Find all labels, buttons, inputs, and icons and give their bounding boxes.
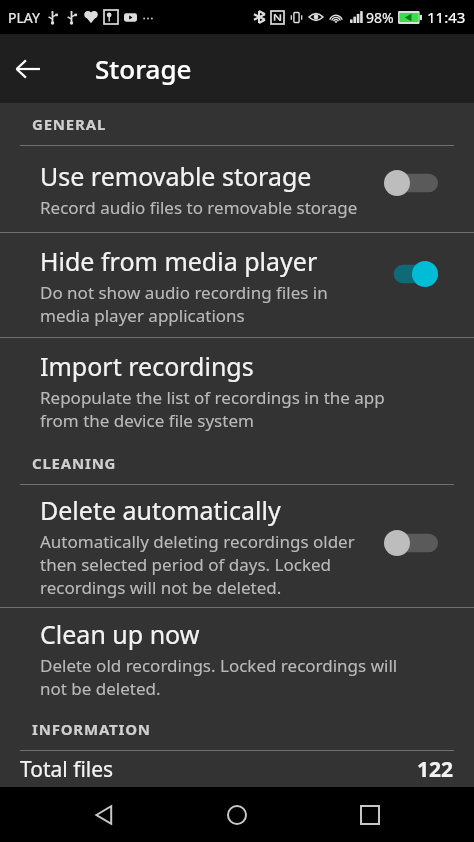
staticText: Use removable storage — [40, 159, 312, 193]
button[interactable]: Back — [75, 787, 133, 842]
staticText: Automatically deleting recordings older … — [40, 530, 355, 599]
button[interactable]: Clean up now — [0, 608, 474, 708]
staticText: Delete automatically — [40, 493, 281, 527]
staticText: 98% — [366, 8, 394, 27]
staticText: Delete old recordings. Locked recordings… — [40, 654, 398, 700]
staticText: Total files — [20, 755, 417, 784]
staticText: PLAY — [8, 8, 40, 27]
staticText: Storage — [95, 51, 192, 86]
staticText: Clean up now — [40, 617, 200, 651]
staticText: Record audio files to removable storage — [40, 196, 358, 219]
staticText: CLEANING — [32, 453, 117, 473]
button[interactable]: Toggle off — [384, 530, 438, 556]
button[interactable]: Delete automatically — [0, 485, 474, 607]
staticText: Hide from media player — [40, 244, 318, 278]
staticText: Do not show audio recording files in med… — [40, 281, 328, 327]
staticText: GENERAL — [32, 114, 107, 134]
button[interactable]: Hide from media player — [0, 233, 474, 337]
staticText: 11:43 — [427, 7, 466, 27]
staticText: Import recordings — [40, 349, 254, 383]
button[interactable]: Toggle on — [384, 261, 438, 287]
button[interactable]: Toggle off — [384, 170, 438, 196]
button[interactable]: Home — [208, 787, 266, 842]
button[interactable]: Recents — [341, 787, 399, 842]
button[interactable]: Back — [0, 41, 56, 97]
staticText: Repopulate the list of recordings in the… — [40, 386, 385, 432]
button[interactable]: Total files — [0, 751, 474, 787]
staticText: INFORMATION — [32, 719, 151, 739]
staticText: 122 — [417, 755, 454, 784]
button[interactable]: Import recordings — [0, 338, 474, 442]
button[interactable]: Use removable storage — [0, 146, 474, 232]
